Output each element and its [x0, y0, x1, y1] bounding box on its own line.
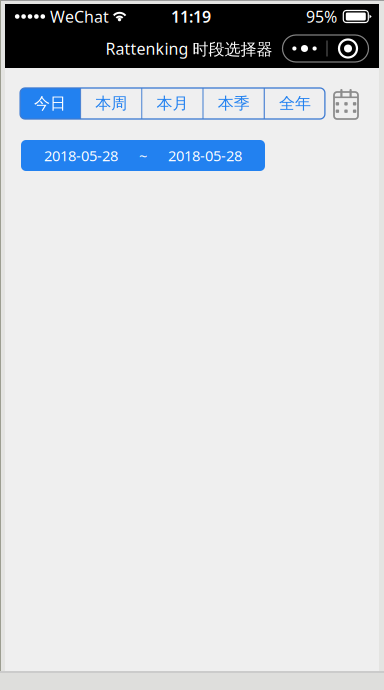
staticText: WeChat [50, 6, 109, 27]
button[interactable]: More options [282, 35, 368, 62]
button[interactable]: Choose date [334, 89, 358, 118]
staticText: Rattenking 时段选择器 [105, 38, 272, 59]
staticText: 今日 [34, 94, 66, 113]
staticText: ~ [139, 146, 147, 165]
staticText: 本月 [156, 94, 188, 113]
staticText: 本季 [218, 94, 250, 113]
button[interactable]: 今日 [20, 88, 80, 119]
button[interactable]: 2018-05-28 [21, 140, 265, 171]
staticText: 2018-05-28 [168, 146, 242, 165]
button[interactable]: 本周 [81, 88, 141, 119]
staticText: 95% [306, 6, 337, 27]
staticText: 11:19 [171, 6, 211, 27]
button[interactable]: 本月 [142, 88, 202, 119]
staticText: 2018-05-28 [44, 146, 118, 165]
staticText: 全年 [279, 94, 311, 113]
staticText: 本周 [95, 94, 127, 113]
button[interactable]: 本季 [204, 88, 264, 119]
button[interactable]: 全年 [265, 88, 325, 119]
